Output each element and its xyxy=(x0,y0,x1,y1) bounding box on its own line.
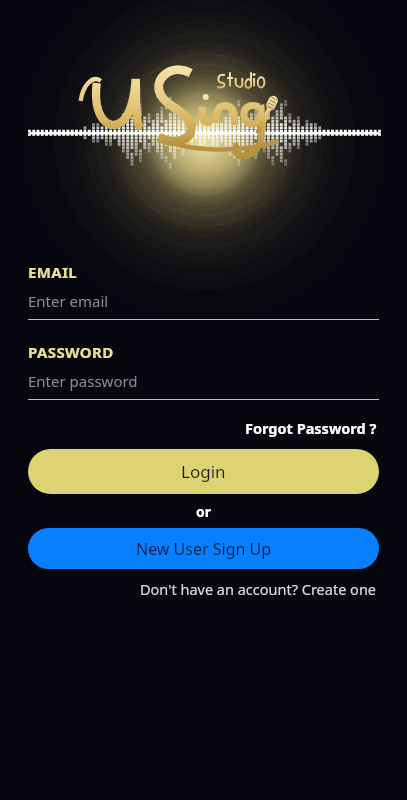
button[interactable]: Enter email xyxy=(28,291,379,311)
staticText: Enter password xyxy=(28,371,138,391)
staticText: EMAIL xyxy=(28,262,78,282)
button[interactable]: Enter password xyxy=(28,371,379,391)
button[interactable]: Don't have an account? Create one xyxy=(138,577,379,601)
button[interactable]: Login xyxy=(28,449,379,494)
staticText: Don't have an account? Create one xyxy=(140,579,377,599)
button[interactable]: Forgot Password ? xyxy=(243,416,379,440)
staticText: Enter email xyxy=(28,291,109,311)
staticText: New User Sign Up xyxy=(136,538,272,560)
staticText: Forgot Password ? xyxy=(245,418,377,438)
staticText: Login xyxy=(181,460,226,483)
staticText: PASSWORD xyxy=(28,342,114,362)
staticText: or xyxy=(196,502,212,521)
button[interactable]: New User Sign Up xyxy=(28,528,379,569)
